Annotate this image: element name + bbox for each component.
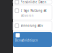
staticText: 2 Tage Nutzung akt <box>21 9 47 12</box>
staticText: aktivieren <box>21 14 34 17</box>
button[interactable]: Benachrichtigen <box>13 32 52 47</box>
staticText: Erinnerung aktiv <box>21 24 43 27</box>
button[interactable]: 2 Tage Nutzung akt <box>13 5 52 20</box>
button[interactable]: Erinnerung aktiv <box>13 21 52 31</box>
staticText: Persönliche Daten <box>21 0 47 4</box>
staticText: Benachrichtigen <box>15 39 38 42</box>
button[interactable]: Persönliche Daten <box>13 0 52 4</box>
